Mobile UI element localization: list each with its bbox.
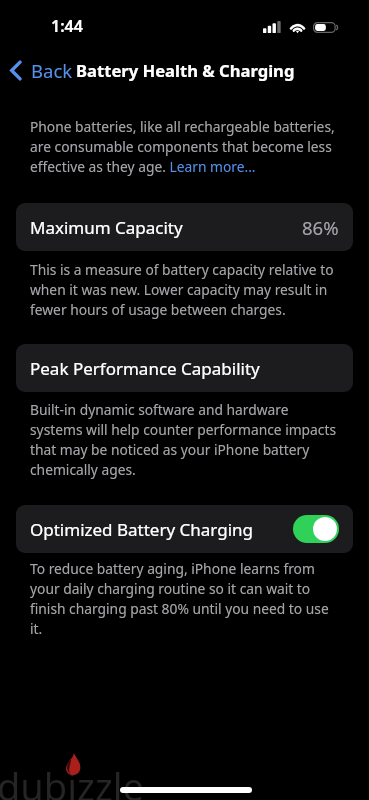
button[interactable]: Optimized Battery Charging toggle [293,515,339,543]
staticText: This is a measure of battery capacity re… [30,259,343,319]
button[interactable]: Optimized Battery Charging [16,505,353,553]
staticText: To reduce battery aging, iPhone learns f… [30,558,343,638]
staticText: dubizzle [0,760,144,800]
staticText: Peak Performance Capability [30,357,260,380]
button[interactable]: Back [6,53,77,88]
staticText: Built-in dynamic software and hardware s… [30,399,343,479]
staticText: 1:44 [51,15,83,37]
staticText: Optimized Battery Charging [30,518,253,541]
button[interactable]: Maximum Capacity [16,203,353,251]
staticText: Back [31,58,73,83]
staticText: 86% [302,215,339,240]
staticText: Maximum Capacity [30,216,183,239]
button[interactable]: Peak Performance Capability [16,344,353,392]
staticText: Phone batteries, like all rechargeable b… [30,116,343,176]
staticText: Battery Health & Charging [76,59,295,82]
